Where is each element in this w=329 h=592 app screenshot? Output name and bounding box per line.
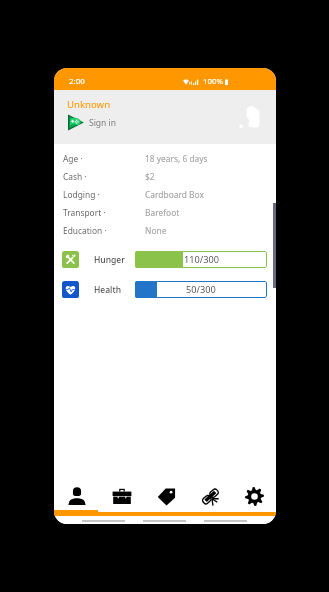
button[interactable]: Profile [54,482,99,510]
staticText: Barefoot [145,207,180,218]
staticText: 18 years, 6 days [145,153,208,164]
staticText: Sign in [89,117,116,129]
staticText: Education · [63,225,107,236]
staticText: Cardboard Box [145,189,204,200]
staticText: Cash · [63,171,87,182]
button[interactable]: Education · [54,221,276,239]
staticText: Lodging · [63,189,100,200]
button[interactable]: Hunger [54,251,276,268]
button[interactable]: Transport · [54,203,276,221]
staticText: Health [94,284,121,296]
staticText: Transport · [63,207,106,218]
staticText: $2 [145,171,155,182]
staticText: 2:00 [69,76,85,87]
staticText: 110/300 [184,253,219,266]
button[interactable]: Cash · [54,167,276,185]
button[interactable]: Items [144,482,188,510]
button[interactable]: Sign in [67,114,116,131]
staticText: 50/300 [186,283,216,296]
staticText: Age · [63,153,83,164]
button[interactable]: Jobs [99,482,144,510]
button[interactable]: Age · [54,149,276,167]
button[interactable]: Lodging · [54,185,276,203]
button[interactable]: Health [54,281,276,298]
staticText: Unknown [67,98,111,111]
staticText: 100% [203,76,224,87]
button[interactable]: Education [188,482,232,510]
staticText: Hunger [94,254,125,266]
staticText: None [145,225,167,236]
button[interactable]: Settings [232,482,276,510]
